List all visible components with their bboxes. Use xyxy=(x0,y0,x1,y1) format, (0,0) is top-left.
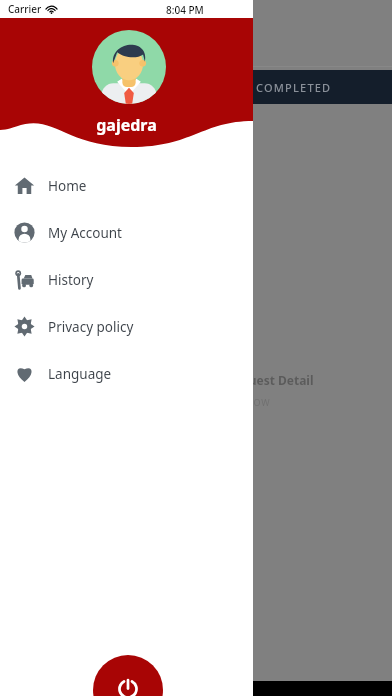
staticText: gajedra xyxy=(0,114,253,136)
staticText: Home xyxy=(48,177,87,195)
staticText: My Account xyxy=(48,224,122,242)
staticText: Carrier xyxy=(8,2,42,16)
button[interactable]: Language xyxy=(0,350,253,397)
button[interactable]: Home xyxy=(0,162,253,209)
staticText: History xyxy=(48,271,94,289)
staticText: ACCEPTED xyxy=(66,80,130,95)
button[interactable]: History xyxy=(0,256,253,303)
staticText: Language xyxy=(48,365,112,383)
button[interactable]: COMPLETED xyxy=(196,70,392,104)
staticText: Privacy policy xyxy=(48,318,134,336)
staticText: 8:04 PM xyxy=(166,3,204,17)
staticText: Service Request Detail xyxy=(180,372,314,388)
button[interactable]: My Account xyxy=(0,209,253,256)
staticText: COMPLETED xyxy=(256,80,332,95)
staticText: TAP TO VIEW NOW xyxy=(180,396,271,408)
button[interactable]: Log out xyxy=(93,655,163,696)
button[interactable]: ACCEPTED xyxy=(0,70,196,104)
button[interactable]: Privacy policy xyxy=(0,303,253,350)
